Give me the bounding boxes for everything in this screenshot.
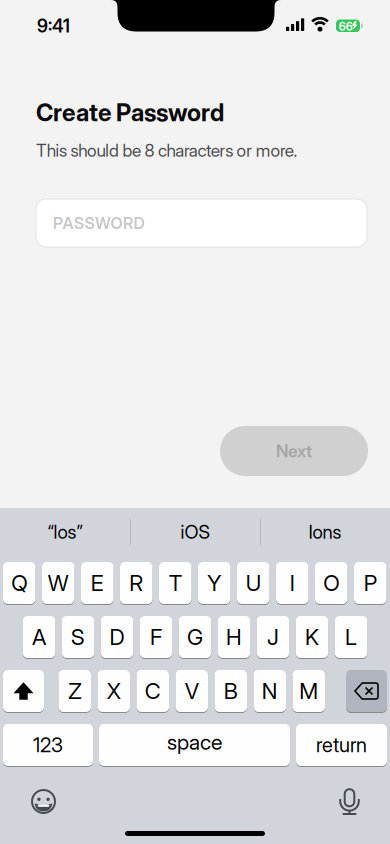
button[interactable]: Ions — [260, 508, 390, 556]
button[interactable]: O — [315, 562, 347, 605]
staticText: J — [267, 624, 279, 650]
button[interactable]: S — [62, 616, 94, 659]
button[interactable]: Shift — [3, 670, 44, 713]
staticText: 123 — [33, 733, 63, 757]
button[interactable]: Dictate — [340, 789, 359, 815]
staticText: E — [91, 570, 104, 596]
staticText: Y — [207, 570, 221, 596]
button[interactable]: Password — [36, 199, 367, 247]
button[interactable]: K — [296, 616, 328, 659]
button[interactable]: space — [99, 724, 290, 767]
staticText: C — [145, 678, 161, 704]
button[interactable]: G — [179, 616, 211, 659]
staticText: M — [299, 678, 318, 704]
button[interactable]: E — [81, 562, 113, 605]
button[interactable]: M — [292, 670, 325, 713]
staticText: W — [48, 570, 69, 596]
staticText: Z — [68, 678, 81, 704]
staticText: Next — [276, 440, 312, 461]
button[interactable]: Next — [220, 426, 368, 476]
button[interactable]: Y — [198, 562, 230, 605]
button[interactable]: N — [253, 670, 286, 713]
staticText: F — [150, 624, 162, 650]
button[interactable]: Emoji — [32, 790, 57, 815]
button[interactable]: I — [276, 562, 308, 605]
staticText: 66 — [339, 20, 353, 33]
button[interactable]: X — [97, 670, 130, 713]
button[interactable]: W — [42, 562, 74, 605]
button[interactable]: iOS — [130, 508, 260, 556]
staticText: space — [167, 729, 222, 755]
button[interactable]: C — [136, 670, 169, 713]
button[interactable]: Z — [58, 670, 91, 713]
staticText: return — [316, 733, 367, 757]
button[interactable]: J — [257, 616, 289, 659]
button[interactable]: H — [218, 616, 250, 659]
staticText: R — [129, 570, 143, 596]
staticText: G — [187, 624, 203, 650]
button[interactable]: U — [237, 562, 269, 605]
button[interactable]: A — [23, 616, 55, 659]
button[interactable]: Delete — [346, 670, 387, 713]
button[interactable]: B — [214, 670, 247, 713]
staticText: 9:41 — [37, 15, 70, 37]
button[interactable]: return — [296, 724, 387, 767]
staticText: V — [185, 678, 199, 704]
staticText: Q — [11, 570, 27, 596]
staticText: iOS — [180, 521, 209, 543]
staticText: O — [323, 570, 339, 596]
staticText: P — [364, 570, 377, 596]
button[interactable]: Q — [3, 562, 35, 605]
staticText: B — [224, 678, 238, 704]
button[interactable]: R — [120, 562, 152, 605]
staticText: S — [71, 624, 85, 650]
staticText: This should be 8 characters or more. — [36, 140, 297, 161]
staticText: K — [305, 624, 319, 650]
staticText: N — [262, 678, 278, 704]
button[interactable]: L — [335, 616, 367, 659]
staticText: I — [290, 570, 295, 596]
button[interactable]: D — [101, 616, 133, 659]
staticText: “los” — [47, 521, 82, 543]
staticText: T — [169, 570, 182, 596]
staticText: L — [345, 624, 357, 650]
staticText: H — [226, 624, 242, 650]
staticText: Ions — [308, 521, 341, 543]
staticText: Create Password — [36, 98, 224, 127]
button[interactable]: 123 — [3, 724, 93, 767]
button[interactable]: V — [175, 670, 208, 713]
staticText: X — [107, 678, 121, 704]
button[interactable]: T — [159, 562, 191, 605]
button[interactable]: “los” — [0, 508, 130, 556]
staticText: A — [32, 624, 46, 650]
staticText: PASSWORD — [53, 213, 144, 233]
button[interactable]: F — [140, 616, 172, 659]
button[interactable]: P — [354, 562, 386, 605]
staticText: U — [246, 570, 261, 596]
staticText: D — [109, 624, 124, 650]
